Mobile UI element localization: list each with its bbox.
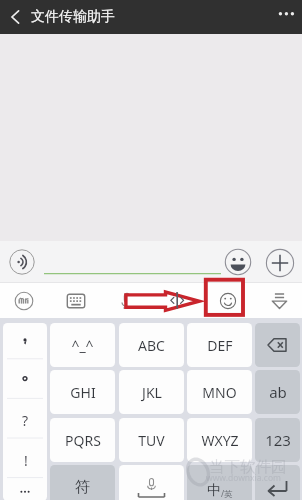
staticText: GHI — [70, 383, 96, 402]
staticText: 当下软件园 — [209, 457, 287, 477]
button[interactable]: Emoticons — [218, 291, 238, 311]
button[interactable]: Backspace — [255, 323, 300, 367]
button[interactable]: ， — [3, 323, 47, 359]
button[interactable]: JKL — [119, 370, 184, 414]
button[interactable]: DEF — [187, 323, 252, 367]
button[interactable]: Enter — [255, 465, 300, 500]
staticText: 123 — [265, 430, 291, 450]
button[interactable]: More functions — [267, 250, 293, 276]
button[interactable]: More options — [270, 0, 302, 34]
button[interactable]: … — [3, 478, 47, 500]
button[interactable]: TUV — [119, 418, 184, 462]
staticText: JKL — [142, 383, 162, 402]
button[interactable]: Space — [119, 465, 184, 500]
button[interactable]: Back — [0, 0, 28, 34]
button[interactable]: ！ — [3, 438, 47, 478]
button[interactable]: Emoji — [225, 249, 251, 275]
button[interactable]: Move cursor — [167, 290, 188, 311]
button[interactable]: ？ — [3, 398, 47, 438]
button[interactable]: Voice — [116, 290, 138, 312]
staticText: 中 — [207, 482, 221, 500]
button[interactable]: MNO — [187, 370, 252, 414]
staticText: ! — [24, 451, 28, 470]
staticText: WXYZ — [201, 431, 239, 450]
button[interactable]: 123 — [255, 418, 300, 462]
button[interactable]: 。 — [3, 359, 47, 399]
button[interactable]: ab — [255, 370, 300, 414]
staticText: ab — [269, 382, 287, 402]
button[interactable]: Chinese English toggle — [187, 465, 252, 500]
button[interactable]: ABC — [119, 323, 184, 367]
button[interactable]: Keyboard — [65, 290, 87, 312]
button[interactable]: WXYZ — [187, 418, 252, 462]
button[interactable]: Hide keyboard — [269, 290, 290, 311]
staticText: ? — [22, 411, 29, 430]
staticText: TUV — [138, 431, 165, 450]
button[interactable]: PQRS — [50, 418, 115, 462]
staticText: 文件传输助手 — [31, 8, 115, 26]
button[interactable]: GHI — [50, 370, 115, 414]
button[interactable]: Handwriting input — [14, 291, 34, 311]
staticText: DEF — [207, 336, 233, 355]
staticText: ^_^ — [71, 336, 94, 355]
staticText: www.downxia.com — [206, 472, 282, 484]
staticText: MNO — [202, 383, 237, 402]
staticText: PQRS — [65, 431, 101, 450]
button[interactable]: 符 — [50, 465, 115, 500]
staticText: ABC — [138, 336, 165, 355]
staticText: /英 — [221, 488, 233, 500]
button[interactable]: Voice input — [9, 249, 35, 275]
button[interactable]: ^_^ — [50, 323, 115, 367]
staticText: 符 — [75, 478, 90, 497]
